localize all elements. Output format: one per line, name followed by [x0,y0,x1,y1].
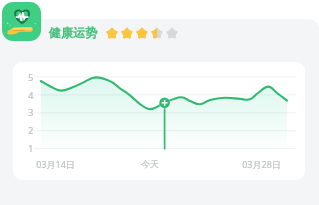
staticText: 4 [28,89,34,102]
staticText: 3 [28,106,34,119]
button[interactable]: Star 1 [105,26,119,40]
staticText: 今天 [141,158,159,169]
staticText: 03月28日 [242,158,281,170]
button[interactable]: 健康运势 [2,2,41,41]
button[interactable]: Star 3 [135,26,149,40]
button[interactable]: Star 5 [165,26,179,40]
staticText: 03月14日 [36,158,75,170]
staticText: 健康运势 [49,25,97,40]
staticText: 2 [28,124,34,137]
button[interactable]: Star 2 [120,26,134,40]
button[interactable]: Star 4 [150,26,164,40]
button[interactable] [13,62,305,180]
staticText: 1 [28,142,34,155]
staticText: 5 [28,71,34,84]
